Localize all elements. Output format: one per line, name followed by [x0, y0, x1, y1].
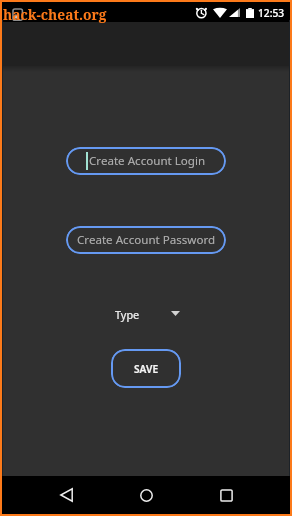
button[interactable]: Recent apps [200, 476, 252, 514]
button[interactable]: Create Account Login [66, 147, 226, 175]
button[interactable]: SAVE [111, 349, 181, 388]
staticText: Create Account Login [89, 153, 206, 169]
staticText: SAVE [134, 362, 159, 376]
button[interactable]: Home [120, 476, 172, 514]
staticText: hack-cheat.org [3, 5, 107, 24]
button[interactable]: Back [40, 476, 92, 514]
staticText: Create Account Password [77, 232, 216, 248]
staticText: 12:53 [258, 6, 285, 20]
staticText: Type [115, 307, 140, 322]
button[interactable]: Type [111, 297, 185, 321]
button[interactable]: Create Account Password [66, 226, 226, 254]
